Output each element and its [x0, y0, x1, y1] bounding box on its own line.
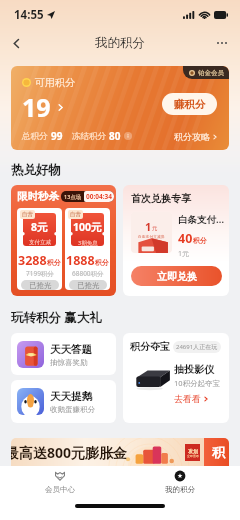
staticText: 白条支付立减券	[138, 234, 165, 239]
staticText: 首次兑换专享	[131, 192, 191, 205]
staticText: 自营	[70, 211, 81, 218]
staticText: 我的积分	[95, 35, 145, 51]
button[interactable]: 我的积分	[120, 466, 240, 498]
staticText: 已抢光	[29, 281, 52, 290]
button[interactable]: 已抢光	[69, 280, 107, 290]
button[interactable]: 限时秒杀	[11, 185, 116, 296]
staticText: 自营	[22, 211, 33, 218]
button[interactable]: 铂金会员	[11, 66, 229, 150]
staticText: 可用积分	[35, 76, 75, 89]
button[interactable]: 天天提鹅	[11, 380, 116, 423]
staticText: 13点场	[64, 193, 82, 201]
staticText: 白条支付…	[178, 213, 225, 226]
button[interactable]: Back	[4, 31, 28, 55]
staticText: 抽投影仪	[174, 363, 214, 376]
button[interactable]: 会员中心	[0, 466, 120, 498]
staticText: 68800积分	[72, 269, 104, 278]
staticText: 10积分起夺宝	[174, 378, 221, 388]
staticText: 40	[178, 230, 193, 247]
staticText: 1	[145, 219, 152, 234]
staticText: 100元	[73, 220, 102, 234]
staticText: 7199积分	[26, 269, 54, 278]
staticText: 1元	[178, 249, 190, 259]
staticText: 收鹅蛋赚积分	[50, 405, 95, 414]
staticText: 铂金会员	[198, 69, 224, 77]
button[interactable]: 已抢光	[21, 280, 59, 290]
staticText: 积分	[95, 258, 109, 267]
staticText: 00:04:34	[86, 192, 112, 201]
button[interactable]: 最高送800元膨胀金	[11, 438, 229, 466]
staticText: 玩转积分 赢大礼	[11, 309, 102, 326]
staticText: 已抢光	[77, 281, 100, 290]
staticText: 总积分	[22, 131, 48, 142]
staticText: 立即兑换	[157, 270, 197, 283]
staticText: 积分夺宝	[130, 340, 170, 353]
staticText: 80	[109, 129, 121, 143]
staticText: 攻划	[188, 448, 198, 454]
button[interactable]: More options	[210, 31, 234, 55]
staticText: 积分	[47, 258, 61, 267]
staticText: 热兑好物	[11, 162, 61, 178]
staticText: 1888	[66, 252, 95, 269]
button[interactable]: 100元	[65, 208, 110, 290]
staticText: 冻结积分	[72, 131, 106, 142]
staticText: 3期免息	[78, 239, 98, 246]
staticText: 支付立减	[29, 239, 51, 246]
staticText: 立即查看	[187, 454, 199, 458]
staticText: 最高送800元膨胀金	[11, 443, 128, 462]
staticText: 限时秒杀	[17, 190, 59, 203]
button[interactable]: 立即兑换	[131, 266, 222, 286]
staticText: 赚积分	[174, 98, 206, 111]
staticText: 天天答题	[50, 343, 92, 356]
staticText: 天天提鹅	[50, 390, 92, 403]
button[interactable]: 8元	[17, 208, 62, 290]
staticText: 去看看	[174, 393, 201, 404]
staticText: 19	[22, 90, 51, 124]
staticText: 我的积分	[165, 485, 195, 494]
button[interactable]: 首次兑换专享	[123, 185, 229, 296]
button[interactable]: 去看看	[174, 393, 209, 404]
staticText: 元	[152, 225, 158, 232]
staticText: 14:55	[14, 7, 44, 23]
button[interactable]: 积分攻略	[174, 131, 218, 142]
button[interactable]: 天天答题	[11, 333, 116, 375]
staticText: 抽惊喜奖励	[50, 358, 88, 367]
staticText: 3288	[18, 252, 47, 269]
staticText: 积分	[193, 236, 207, 245]
button[interactable]: 积分夺宝	[123, 333, 229, 423]
staticText: 积分攻略	[174, 131, 210, 142]
staticText: 会员中心	[45, 485, 75, 494]
staticText: 24691人正在玩	[176, 343, 218, 351]
staticText: 积	[212, 444, 225, 460]
button[interactable]: 赚积分	[162, 93, 217, 115]
staticText: 8元	[31, 220, 48, 234]
staticText: 99	[51, 129, 63, 143]
